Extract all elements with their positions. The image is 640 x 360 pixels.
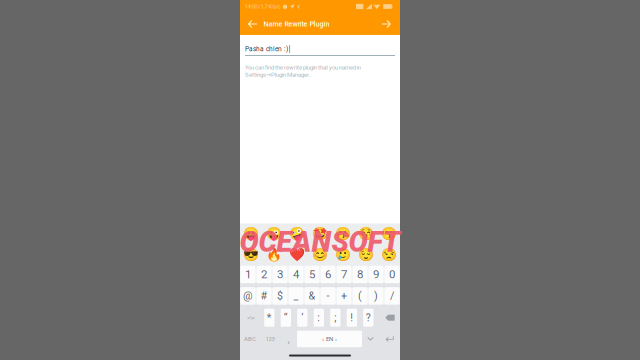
button[interactable]: ❤ [286,244,309,265]
button[interactable]: 🤪 [286,223,309,244]
staticText: : [317,311,320,324]
staticText: / [390,290,394,302]
staticText: 5 [309,268,315,281]
staticText: You can find the rewrite plugin that you… [245,64,361,71]
button[interactable]: 😗 [331,223,354,244]
button[interactable]: 😌 [354,244,377,265]
button[interactable]: ; [330,309,340,327]
staticText: 😒 [381,247,397,262]
staticText: _ [293,290,298,302]
button[interactable]: 123 [260,331,280,347]
button[interactable]: 😊 [309,244,331,265]
staticText: ! [350,311,353,324]
button[interactable]: ‹ EN › [297,331,362,347]
staticText: ❤ [289,247,305,262]
staticText: 😌 [358,247,374,262]
button[interactable]: 2 [256,266,272,283]
button[interactable]: # [256,287,272,305]
staticText: - [326,290,329,302]
staticText: $ [277,290,283,302]
button[interactable]: ABC [240,331,260,347]
staticText: 1 [245,268,251,281]
staticText: 😙 [381,226,397,241]
button[interactable]: Enter [379,331,400,347]
staticText: ‘ [301,311,303,324]
staticText: # [260,290,267,302]
button[interactable]: 😛 [240,223,263,244]
staticText: 🥲 [335,247,351,262]
button[interactable]: _ [288,287,304,305]
button[interactable]: 8 [352,266,368,283]
button[interactable]: 😎 [240,244,263,265]
button[interactable]: 6 [320,266,336,283]
button[interactable]: 5 [304,266,320,283]
staticText: + [341,290,347,302]
staticText: =\< [247,314,255,321]
button[interactable]: Name Rewrite Plugin [260,13,329,35]
button[interactable]: 0 [384,266,400,283]
button[interactable]: @ [240,287,256,305]
button[interactable]: ? [363,309,373,327]
staticText: 8 [357,268,363,281]
staticText: 6 [325,268,331,281]
button[interactable]: 9 [368,266,384,283]
staticText: “ [284,311,288,324]
button[interactable]: ‘ [297,309,307,327]
staticText: OCEANSOFT [239,225,400,259]
staticText: 😜 [266,226,282,241]
button[interactable]: + [336,287,352,305]
button[interactable]: 😒 [377,244,400,265]
button[interactable]: ! [347,309,357,327]
staticText: ; [334,311,336,324]
button[interactable]: 3 [272,266,288,283]
button[interactable]: 😜 [263,223,286,244]
staticText: 😛 [243,226,259,241]
button[interactable]: ) [368,287,384,305]
staticText: & [308,290,315,302]
button[interactable]: , [280,331,297,347]
button[interactable]: 😚 [354,223,377,244]
button[interactable]: =\< [240,309,262,327]
staticText: 0 [389,268,395,281]
staticText: Name Rewrite Plugin [263,20,329,28]
button[interactable]: : [314,309,324,327]
button[interactable]: * [264,309,274,327]
button[interactable]: & [304,287,320,305]
staticText: Pasha chlen :) [245,45,288,53]
staticText: 😗 [335,226,351,241]
staticText: 😎 [243,247,259,262]
staticText: ABC [244,335,256,342]
staticText: 🤪 [289,226,305,241]
button[interactable]: Backspace [380,309,400,327]
staticText: 2 [261,268,267,281]
staticText: 🔥 [266,247,282,262]
staticText: 7 [341,268,347,281]
button[interactable]: 🥲 [331,244,354,265]
staticText: 3 [277,268,283,281]
button[interactable]: Pasha chlen :) [245,44,395,53]
button[interactable]: 🤩 [309,223,331,244]
button[interactable]: $ [272,287,288,305]
button[interactable]: 🔥 [263,244,286,265]
button[interactable]: - [320,287,336,305]
button[interactable]: 7 [336,266,352,283]
staticText: ‹ EN › [322,335,337,343]
button[interactable]: Back [244,13,260,35]
button[interactable]: “ [281,309,291,327]
button[interactable]: 1 [240,266,256,283]
button[interactable]: 4 [288,266,304,283]
button[interactable]: 😙 [377,223,400,244]
staticText: * [267,311,272,324]
staticText: 9 [373,268,379,281]
staticText: ) [374,290,378,302]
staticText: , [287,333,289,345]
button[interactable]: Apply [378,13,394,35]
staticText: 123 [265,335,274,342]
staticText: 😊 [312,247,328,262]
staticText: 4 [293,268,299,281]
button[interactable]: ( [352,287,368,305]
staticText: Settings→Plugin Manager. [245,71,311,78]
staticText: 😚 [358,226,374,241]
button[interactable]: Hide keyboard [362,331,379,347]
button[interactable]: / [384,287,400,305]
